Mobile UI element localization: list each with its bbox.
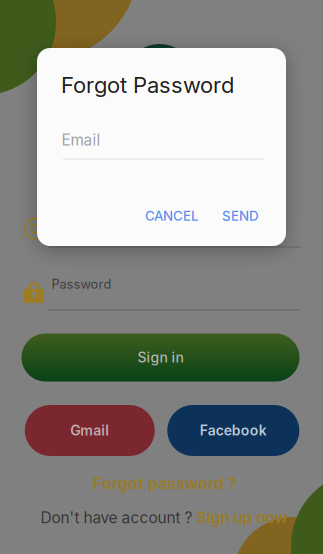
button[interactable]: Sign up now xyxy=(196,508,287,527)
staticText: Don't have account ? xyxy=(40,508,192,527)
staticText: SEND xyxy=(222,208,259,224)
button[interactable]: Sign in xyxy=(21,333,299,381)
button[interactable]: Gmail xyxy=(25,405,155,456)
button[interactable]: SEND xyxy=(217,201,263,231)
button[interactable]: Forgot password ? xyxy=(93,474,237,493)
button[interactable]: CANCEL xyxy=(140,201,204,231)
staticText: Gmail xyxy=(70,422,109,439)
staticText: CANCEL xyxy=(145,208,199,224)
staticText: Sign in xyxy=(137,349,183,366)
staticText: Sign up now xyxy=(196,508,287,527)
staticText: Forgot Password xyxy=(61,72,234,98)
staticText: Password xyxy=(51,276,111,292)
staticText: Email xyxy=(61,131,100,149)
staticText: Facebook xyxy=(200,422,267,439)
button[interactable]: Facebook xyxy=(167,405,299,456)
staticText: Forgot password ? xyxy=(93,474,237,493)
